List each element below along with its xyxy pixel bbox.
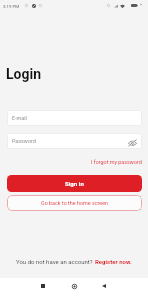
button[interactable]: Back [96,278,112,294]
button[interactable]: You do not have an account? [0,258,148,265]
staticText: E-mail [12,115,27,121]
button[interactable]: I forgot my password [91,159,142,165]
button[interactable]: Sign in [7,175,142,192]
staticText: Sign in [65,180,84,187]
button[interactable]: E-mail [7,110,142,126]
other: Show password [128,139,137,146]
staticText: Login [6,66,42,82]
staticText: Password [12,138,36,144]
staticText: You do not have an account? [16,258,95,265]
staticText: Register now. [95,258,132,265]
button[interactable]: Go back to the home screen [7,195,142,211]
staticText: 3:19 PM [3,4,20,9]
button[interactable]: Home [66,278,82,294]
staticText: Go back to the home screen [41,200,109,206]
staticText: + [140,3,143,7]
staticText: I forgot my password [91,159,142,165]
button[interactable]: Password [7,133,142,149]
button[interactable]: Recents [35,278,51,294]
